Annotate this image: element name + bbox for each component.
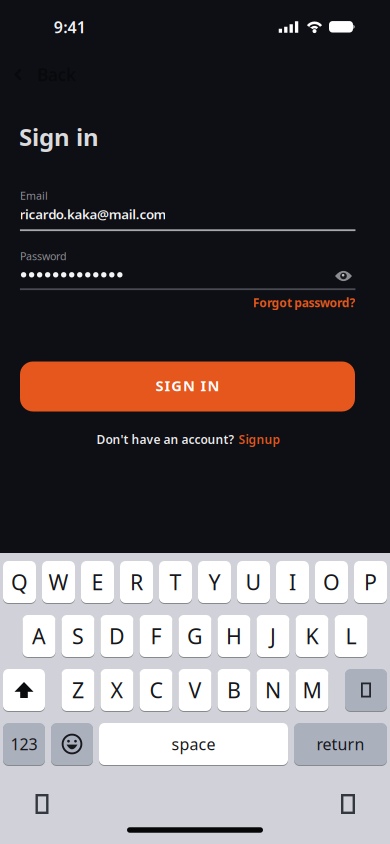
staticText: J: [270, 622, 276, 650]
staticText: Don't have an account?: [96, 431, 234, 447]
button[interactable]: U: [237, 560, 270, 604]
button[interactable]: Forgot password?: [253, 295, 355, 310]
staticText: S: [72, 622, 84, 650]
button[interactable]: H: [217, 614, 250, 658]
button[interactable]: Show password: [335, 270, 352, 281]
button[interactable]: E: [81, 560, 114, 604]
button[interactable]: Numbers: [3, 722, 45, 766]
staticText: D: [109, 622, 125, 650]
staticText: Y: [208, 568, 220, 596]
button[interactable]: V: [178, 668, 211, 712]
staticText: U: [245, 568, 261, 596]
staticText: Back: [37, 63, 76, 86]
staticText: Forgot password?: [253, 295, 355, 310]
button[interactable]: M: [295, 668, 328, 712]
button[interactable]: B: [217, 668, 250, 712]
button[interactable]: Y: [198, 560, 231, 604]
staticText: T: [169, 568, 181, 596]
button[interactable]: C: [139, 668, 172, 712]
staticText: Signup: [238, 431, 280, 447]
button[interactable]: J: [256, 614, 289, 658]
staticText: return: [316, 733, 364, 755]
staticText: 9:41: [54, 16, 86, 38]
button[interactable]: D: [100, 614, 133, 658]
button[interactable]: Emoji: [51, 722, 93, 766]
button[interactable]: S: [61, 614, 94, 658]
button[interactable]: A: [22, 614, 55, 658]
button[interactable]: F: [139, 614, 172, 658]
staticText: W: [48, 568, 68, 596]
button[interactable]: Q: [3, 560, 36, 604]
staticText: SIGN IN: [156, 376, 219, 395]
button[interactable]: Shift: [3, 668, 45, 712]
button[interactable]: P: [354, 560, 387, 604]
button[interactable]: Delete: [345, 668, 387, 712]
button[interactable]: W: [42, 560, 75, 604]
staticText: O: [323, 568, 340, 596]
button[interactable]: I: [276, 560, 309, 604]
staticText: V: [188, 676, 201, 704]
staticText: X: [110, 676, 123, 704]
button[interactable]: SIGN IN: [20, 361, 355, 411]
staticText: F: [150, 622, 161, 650]
staticText: ricardo.kaka@mail.com: [19, 205, 166, 223]
staticText: N: [265, 676, 281, 704]
button[interactable]: Signup: [238, 431, 280, 447]
button[interactable]: G: [178, 614, 211, 658]
staticText: P: [364, 568, 377, 596]
button[interactable]: Z: [61, 668, 94, 712]
button[interactable]: R: [120, 560, 153, 604]
staticText: I: [289, 568, 296, 596]
staticText: C: [149, 676, 162, 704]
button[interactable]: Dictation: [341, 794, 355, 814]
staticText: 123: [10, 733, 37, 755]
staticText: Q: [11, 568, 28, 596]
button[interactable]: space: [99, 722, 288, 766]
button[interactable]: Emoji keyboard: [35, 794, 48, 814]
staticText: B: [227, 676, 241, 704]
staticText: space: [171, 733, 215, 755]
staticText: L: [345, 622, 356, 650]
staticText: Z: [72, 676, 84, 704]
staticText: G: [187, 622, 203, 650]
staticText: Sign in: [19, 121, 99, 153]
button[interactable]: L: [334, 614, 367, 658]
button[interactable]: O: [315, 560, 348, 604]
button[interactable]: N: [256, 668, 289, 712]
staticText: H: [226, 622, 242, 650]
button[interactable]: K: [295, 614, 328, 658]
button[interactable]: X: [100, 668, 133, 712]
staticText: K: [305, 622, 318, 650]
staticText: A: [32, 622, 46, 650]
button[interactable]: return: [294, 722, 387, 766]
staticText: E: [91, 568, 103, 596]
staticText: Password: [20, 249, 67, 263]
staticText: Email: [20, 189, 48, 203]
button[interactable]: T: [159, 560, 192, 604]
staticText: M: [302, 676, 321, 704]
staticText: R: [130, 568, 143, 596]
